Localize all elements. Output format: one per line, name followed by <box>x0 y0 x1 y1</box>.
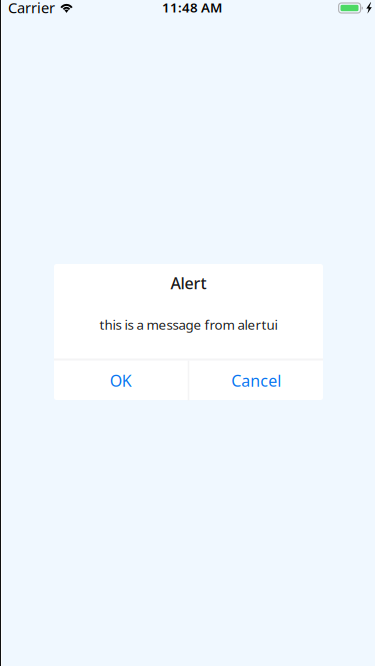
staticText: Cancel <box>231 370 281 391</box>
staticText: Alert <box>170 272 206 294</box>
button[interactable]: Cancel <box>189 360 323 400</box>
button[interactable]: OK <box>54 360 188 400</box>
staticText: 11:48 AM <box>162 0 222 16</box>
staticText: OK <box>110 370 132 391</box>
staticText: Carrier <box>8 0 55 17</box>
staticText: this is a message from alertui <box>99 316 277 333</box>
